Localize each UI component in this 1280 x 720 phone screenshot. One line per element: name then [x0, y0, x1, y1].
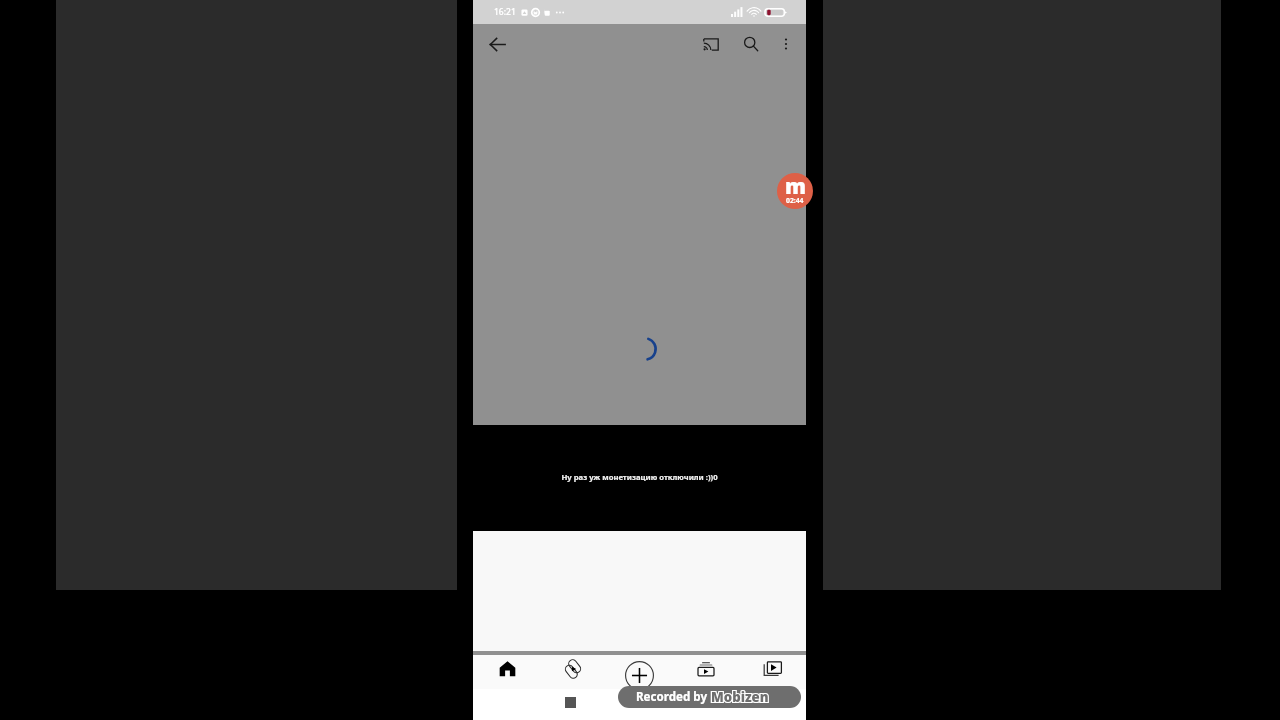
button[interactable]: Create [623, 655, 655, 689]
staticText: Recorded by [636, 689, 711, 705]
button[interactable]: System back [624, 689, 652, 717]
staticText: Ну раз уж монетизацию отключили :))0 [561, 472, 718, 482]
button[interactable]: Back [479, 26, 515, 62]
staticText: 02:44 [786, 196, 804, 205]
button[interactable]: Recent apps [556, 689, 584, 717]
button[interactable]: Home [491, 655, 523, 689]
staticText: m [785, 173, 806, 201]
button[interactable]: Mobizen recorder [777, 173, 813, 209]
button[interactable]: Library [757, 655, 789, 689]
button[interactable]: More options [772, 30, 800, 58]
staticText: 16:21 [494, 6, 516, 18]
staticText: Mobizen [711, 688, 769, 706]
button[interactable]: Cast [696, 29, 726, 59]
button[interactable]: Subscriptions [690, 655, 722, 689]
staticText: Mobizen [711, 688, 769, 706]
button[interactable]: Shorts [557, 655, 589, 689]
button[interactable]: Search [736, 29, 766, 59]
